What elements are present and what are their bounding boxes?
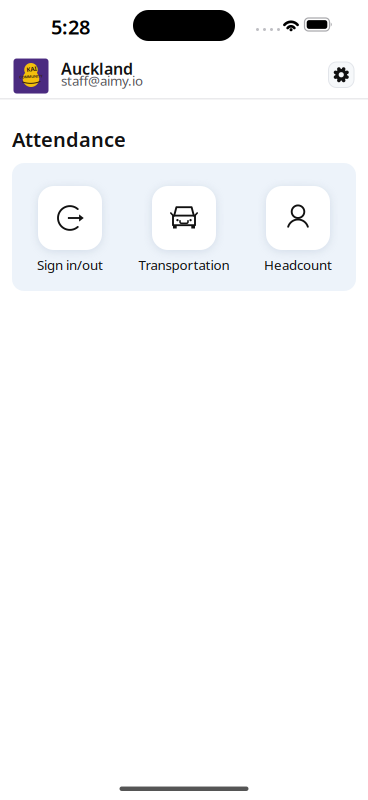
button[interactable]: Transportation bbox=[127, 186, 241, 274]
staticText: Transportation bbox=[138, 256, 229, 274]
button[interactable]: Headcount bbox=[241, 186, 355, 274]
staticText: KAI bbox=[20, 60, 43, 78]
staticText: Auckland bbox=[61, 58, 133, 79]
staticText: Sign in/out bbox=[37, 256, 103, 274]
button[interactable]: Sign in/out bbox=[13, 186, 127, 274]
staticText: Attendance bbox=[12, 126, 126, 153]
button[interactable]: Settings bbox=[328, 62, 354, 87]
staticText: COMMUNITY bbox=[0, 69, 65, 84]
staticText: 5:28 bbox=[51, 13, 90, 40]
staticText: staff@aimy.io bbox=[61, 72, 143, 89]
staticText: Headcount bbox=[264, 256, 332, 274]
